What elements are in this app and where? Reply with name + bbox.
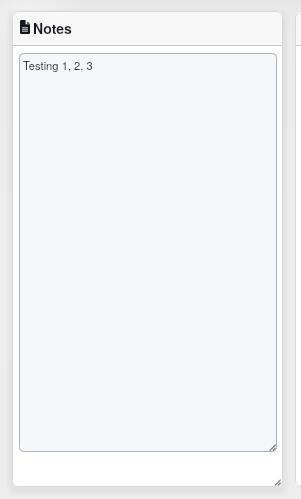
staticText: Notes [33,18,72,38]
button[interactable]: Testing 1, 2, 3 [19,53,277,452]
other: Note [20,20,30,34]
button[interactable] [295,11,301,487]
other: Resize note [266,471,282,487]
button[interactable]: Note [12,11,283,45]
staticText: Testing 1, 2, 3 [23,57,93,73]
